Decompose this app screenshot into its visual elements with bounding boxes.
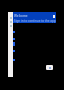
button[interactable]: Navigation item xyxy=(8,20,13,24)
button[interactable]: Navigation item xyxy=(8,16,13,20)
button[interactable]: Navigation item xyxy=(8,24,13,28)
button[interactable]: Action xyxy=(46,65,53,70)
staticText: Welcome xyxy=(14,14,28,18)
button[interactable]: Welcome xyxy=(13,12,56,23)
staticText: Sign in to continue to the app xyxy=(14,19,56,23)
